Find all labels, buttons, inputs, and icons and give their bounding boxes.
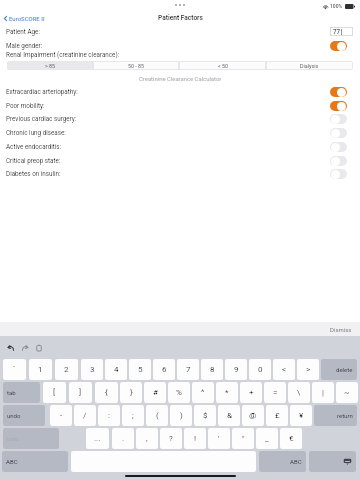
button[interactable]: | <box>312 382 334 403</box>
staticText: Dialysis <box>300 63 319 69</box>
button[interactable]: > 85 <box>7 61 93 70</box>
button[interactable]: Active endocarditis: <box>6 140 347 153</box>
button[interactable]: Diabetes on insulin: <box>330 169 347 179</box>
button[interactable]: . <box>112 428 134 449</box>
button[interactable]: tab <box>3 382 40 403</box>
button[interactable]: @ <box>242 405 264 426</box>
button[interactable]: ~ <box>336 382 358 403</box>
button[interactable]: Male gender <box>330 41 347 51</box>
button[interactable]: Poor mobility: <box>330 101 347 111</box>
button[interactable]: Poor mobility: <box>6 99 347 112</box>
button[interactable]: 7 <box>177 359 199 380</box>
button[interactable]: > <box>297 359 319 380</box>
staticText: EuroSCORE II <box>9 15 45 22</box>
button[interactable]: = <box>264 382 286 403</box>
button[interactable]: # <box>144 382 166 403</box>
staticText: Active endocarditis: <box>6 143 62 150</box>
button[interactable]: ABC <box>259 451 306 472</box>
button[interactable]: ... <box>86 428 109 449</box>
button[interactable]: - <box>50 405 72 426</box>
button[interactable]: ? <box>160 428 182 449</box>
button[interactable]: 4 <box>105 359 127 380</box>
button[interactable]: { <box>95 382 118 403</box>
button[interactable]: % <box>168 382 190 403</box>
button[interactable]: _ <box>256 428 278 449</box>
button[interactable]: ; <box>122 405 144 426</box>
button[interactable]: € <box>280 428 302 449</box>
button[interactable]: Diabetes on insulin: <box>6 167 347 180</box>
button[interactable]: * <box>216 382 238 403</box>
button[interactable]: Extracardiac arteriopathy: <box>330 87 347 97</box>
button[interactable]: Chronic lung disease: <box>6 126 347 139</box>
staticText: = <box>273 388 278 397</box>
staticText: * <box>225 388 229 397</box>
staticText: 2 <box>64 365 69 374</box>
staticText: ] <box>79 388 82 397</box>
staticText: 0 <box>258 365 263 374</box>
button[interactable]: $ <box>194 405 216 426</box>
button[interactable]: ¥ <box>290 405 312 426</box>
button[interactable]: ) <box>170 405 192 426</box>
button[interactable]: ( <box>146 405 168 426</box>
button[interactable]: delete <box>321 359 357 380</box>
button[interactable]: return <box>314 405 357 426</box>
button[interactable]: Dialysis <box>266 61 353 70</box>
button[interactable]: < 50 <box>179 61 266 70</box>
staticText: ( <box>156 411 159 420</box>
button[interactable]: 2 <box>55 359 78 380</box>
button[interactable]: Extracardiac arteriopathy: <box>6 85 347 98</box>
button[interactable]: Critical preop state: <box>330 156 347 166</box>
button[interactable]: } <box>120 382 142 403</box>
staticText: { <box>105 388 108 397</box>
button[interactable]: 0 <box>249 359 271 380</box>
button[interactable]: 5 <box>129 359 151 380</box>
staticText: Creatinine Clearance Calculator <box>139 76 222 83</box>
button[interactable]: ] <box>69 382 92 403</box>
button[interactable]: Dismiss <box>330 326 352 333</box>
button[interactable]: 6 <box>153 359 175 380</box>
button[interactable]: undo <box>3 405 45 426</box>
button[interactable]: 9 <box>225 359 247 380</box>
button[interactable]: ^ <box>192 382 214 403</box>
button[interactable]: " <box>232 428 254 449</box>
button[interactable]: , <box>136 428 158 449</box>
staticText: return <box>337 412 353 419</box>
button[interactable]: 3 <box>81 359 103 380</box>
button[interactable]: key <box>309 451 356 472</box>
staticText: delete <box>336 366 353 373</box>
button[interactable]: ' <box>208 428 230 449</box>
button[interactable]: / <box>74 405 96 426</box>
button[interactable]: : <box>98 405 120 426</box>
button[interactable]: ! <box>184 428 206 449</box>
button[interactable]: ABC <box>2 451 68 472</box>
staticText: ' <box>218 434 220 443</box>
button[interactable]: + <box>240 382 262 403</box>
button[interactable]: Active endocarditis: <box>330 142 347 152</box>
button[interactable]: 50 - 85 <box>93 61 179 70</box>
button[interactable]: Critical preop state: <box>6 154 347 167</box>
button[interactable]: \ <box>288 382 310 403</box>
button[interactable]: 77 <box>330 27 353 36</box>
button[interactable]: 1 <box>29 359 52 380</box>
button[interactable]: £ <box>266 405 288 426</box>
button[interactable]: Creatinine Clearance Calculator <box>139 76 222 83</box>
button[interactable]: Undo <box>6 343 15 352</box>
button[interactable]: [ <box>43 382 66 403</box>
button[interactable]: EuroSCORE II <box>3 15 45 22</box>
button[interactable]: Paste <box>34 343 43 352</box>
button[interactable]: Chronic lung disease: <box>330 128 347 138</box>
staticText: 1 <box>38 365 43 374</box>
staticText: / <box>83 411 87 420</box>
staticText: : <box>108 411 110 420</box>
button[interactable]: Previous cardiac surgery: <box>6 112 347 125</box>
button[interactable]: 8 <box>201 359 223 380</box>
button[interactable]: ` <box>3 359 26 380</box>
staticText: Patient Age: <box>6 28 40 35</box>
button[interactable]: & <box>218 405 240 426</box>
staticText: & <box>227 411 232 420</box>
button[interactable]: Redo <box>20 343 29 352</box>
button[interactable]: < <box>273 359 295 380</box>
button[interactable]: Previous cardiac surgery: <box>330 114 347 124</box>
